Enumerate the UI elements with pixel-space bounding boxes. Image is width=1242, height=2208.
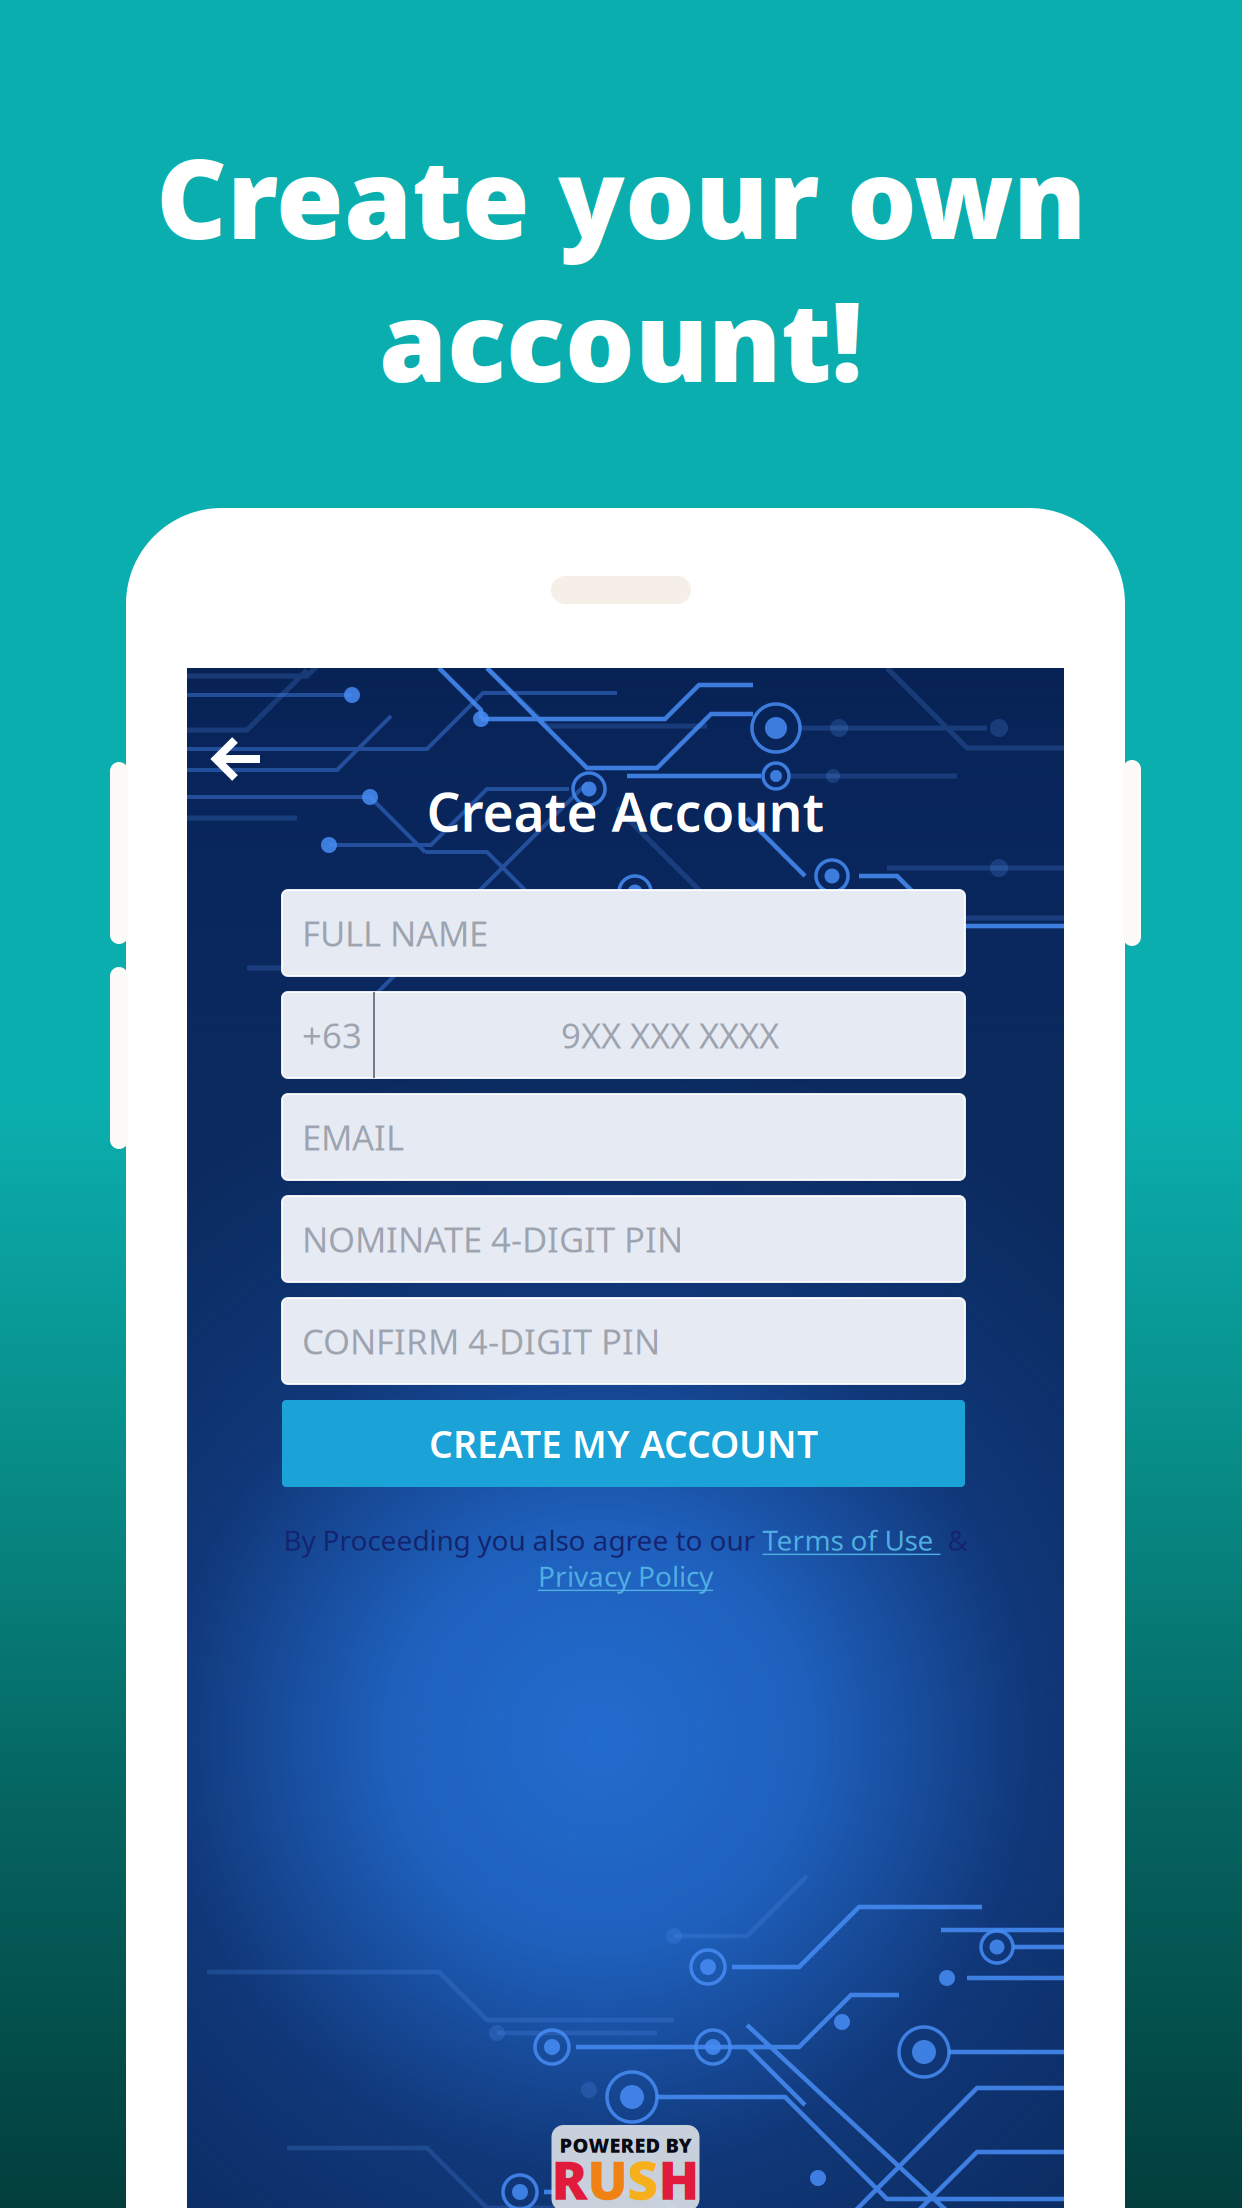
staticText: Create your own (156, 124, 1086, 269)
button[interactable]: NOMINATE 4-DIGIT PIN (282, 1196, 965, 1282)
staticText: NOMINATE 4-DIGIT PIN (302, 1216, 683, 1262)
staticText: R (551, 2144, 587, 2208)
button[interactable]: Back (188, 710, 288, 808)
button[interactable]: CONFIRM 4-DIGIT PIN (282, 1298, 965, 1384)
staticText: 9XX XXX XXXX (561, 1012, 779, 1058)
button[interactable]: FULL NAME (282, 890, 965, 976)
staticText: FULL NAME (302, 910, 488, 956)
staticText: EMAIL (302, 1114, 404, 1160)
staticText: Terms of Use (762, 1521, 940, 1559)
staticText: Create Account (426, 776, 824, 846)
staticText: & (940, 1521, 967, 1559)
button[interactable]: Terms of Use (762, 1521, 940, 1559)
button[interactable]: +63 (282, 992, 965, 1078)
staticText: H (658, 2144, 699, 2208)
staticText: S (627, 2144, 658, 2208)
staticText: U (587, 2144, 627, 2208)
staticText: +63 (302, 1012, 362, 1058)
button[interactable]: CREATE MY ACCOUNT (282, 1400, 965, 1487)
staticText: CONFIRM 4-DIGIT PIN (302, 1318, 660, 1364)
staticText: account! (379, 267, 863, 412)
staticText: Privacy Policy (538, 1557, 713, 1595)
button[interactable]: EMAIL (282, 1094, 965, 1180)
staticText: POWERED BY (559, 2132, 691, 2158)
button[interactable]: Privacy Policy (187, 1558, 1064, 1594)
staticText: By Proceeding you also agree to our (283, 1521, 762, 1559)
staticText: CREATE MY ACCOUNT (429, 1419, 818, 1468)
